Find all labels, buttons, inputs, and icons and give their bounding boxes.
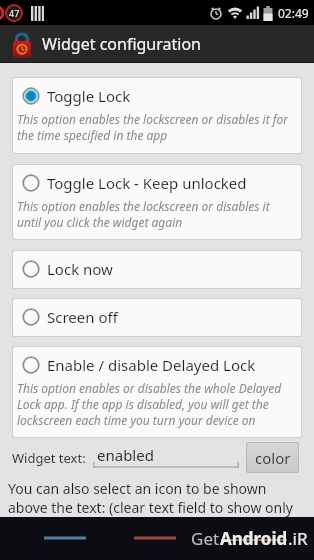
staticText: Lock app. If the app is disabled, you wi… xyxy=(17,396,269,412)
button[interactable]: Toggle Lock - Keep unlocked xyxy=(13,165,301,239)
button[interactable]: Screen off xyxy=(13,299,301,336)
staticText: color xyxy=(255,448,291,468)
staticText: Get xyxy=(191,527,220,550)
staticText: enabled xyxy=(97,445,154,465)
staticText: Toggle Lock - Keep unlocked xyxy=(47,173,247,193)
staticText: until you click the widget again xyxy=(17,214,183,230)
staticText: Widget text: xyxy=(12,449,86,467)
staticText: .iR xyxy=(288,527,308,550)
staticText: Widget configuration xyxy=(42,33,201,55)
staticText: 02:49 xyxy=(278,5,309,21)
staticText: above the text: (clear text field to sho… xyxy=(8,498,293,517)
staticText: lockscreen each time you turn your devic… xyxy=(17,412,256,428)
staticText: Enable / disable Delayed Lock xyxy=(47,355,256,375)
staticText: This option enables or disables the whol… xyxy=(17,380,282,396)
staticText: 47 xyxy=(9,7,20,19)
button[interactable]: Enable / disable Delayed Lock xyxy=(13,347,301,437)
staticText: Lock now xyxy=(47,259,113,279)
staticText: You can also select an icon to be shown xyxy=(8,479,267,498)
staticText: This option enables the lockscreen or di… xyxy=(17,111,289,127)
button[interactable]: enabled xyxy=(93,442,239,473)
button[interactable]: color xyxy=(247,443,298,472)
staticText: Android xyxy=(220,527,288,550)
staticText: the time specified in the app xyxy=(17,127,168,143)
staticText: This option enables the lockscreen or di… xyxy=(17,198,270,214)
staticText: Screen off xyxy=(47,307,118,327)
button[interactable]: Toggle Lock xyxy=(13,78,301,153)
button[interactable]: Lock now xyxy=(13,251,301,288)
staticText: Toggle Lock xyxy=(47,86,131,106)
